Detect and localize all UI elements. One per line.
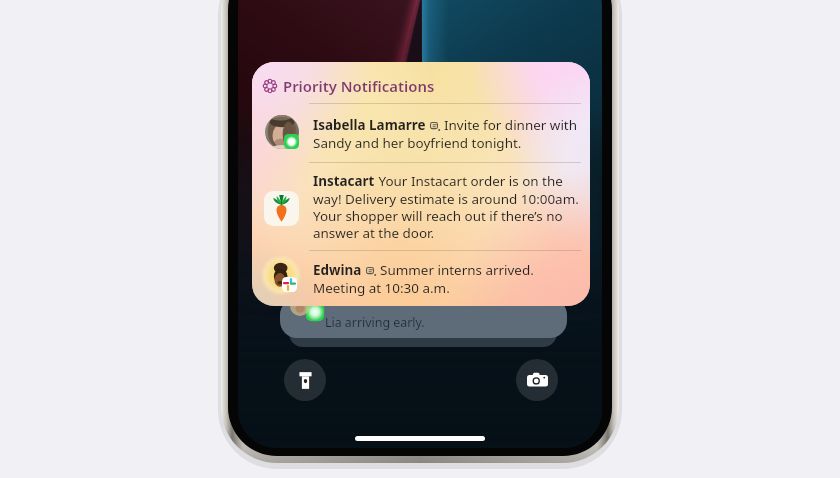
button[interactable]: Flashlight — [284, 359, 326, 401]
staticText: Sandy and her boyfriend tonight. — [313, 134, 522, 152]
staticText: Isabella Lamarre — [313, 116, 426, 134]
staticText: Lia arriving early. — [325, 314, 425, 331]
staticText: Invite for dinner with — [444, 116, 578, 134]
staticText: Instacart — [313, 172, 375, 190]
button[interactable]: Camera — [516, 359, 558, 401]
staticText: Priority Notifications — [283, 76, 435, 96]
staticText: Your Instacart order is on the — [375, 172, 563, 190]
button[interactable]: Lia arriving early. — [280, 298, 567, 338]
staticText: Meeting at 10:30 a.m. — [313, 279, 450, 297]
staticText: way! Delivery estimate is around 10:00am… — [313, 190, 579, 242]
staticText: Summer interns arrived. — [380, 261, 534, 279]
button[interactable]: Priority Notifications — [252, 62, 590, 306]
staticText: Edwina — [313, 261, 362, 279]
